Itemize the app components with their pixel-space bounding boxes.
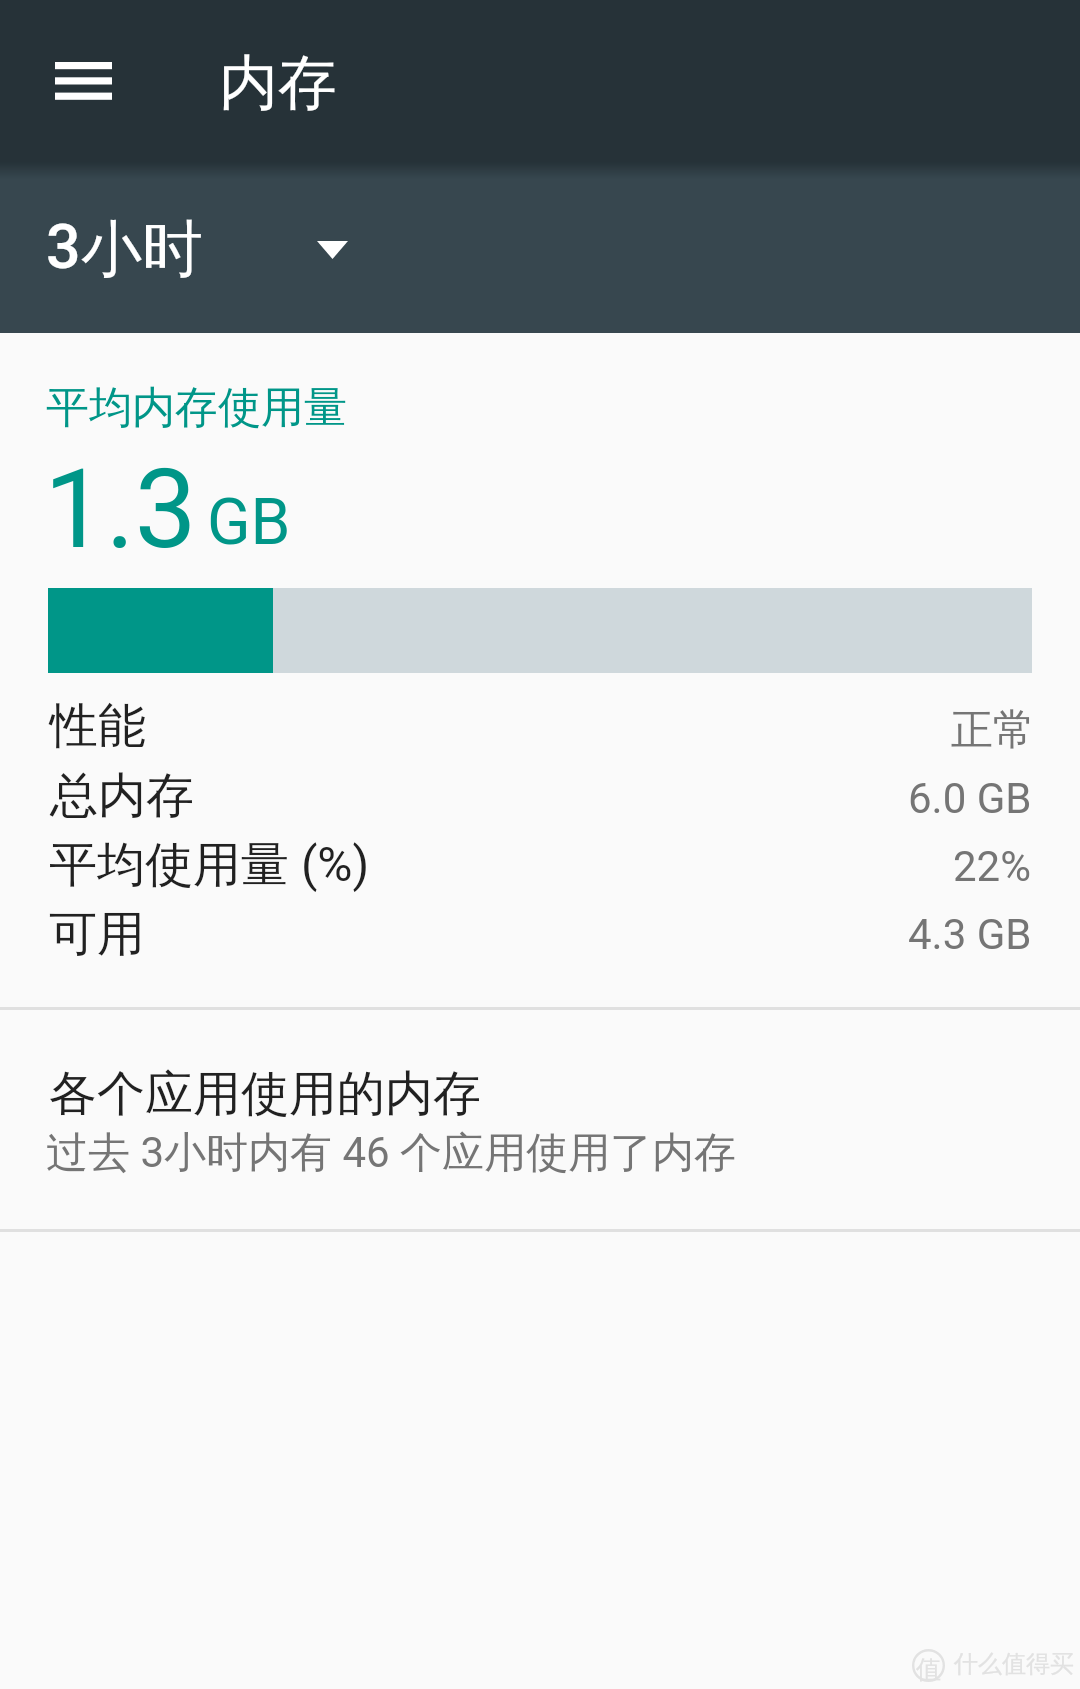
staticText: 3 — [46, 211, 81, 282]
staticText: 可用 — [49, 904, 145, 964]
staticText: 平均内存使用量 — [46, 381, 347, 435]
staticText: 正常 — [951, 704, 1035, 757]
staticText: 什么值得买 — [954, 1649, 1074, 1679]
button[interactable]: Open navigation menu — [31, 29, 135, 133]
button[interactable]: 各个应用使用的内存 — [0, 1010, 1080, 1229]
staticText: 1.3 — [44, 445, 197, 574]
staticText: 22% — [953, 842, 1031, 891]
staticText: 总内存 — [50, 766, 194, 826]
staticText: 内存 — [219, 46, 337, 120]
staticText: 4.3 GB — [908, 910, 1032, 959]
staticText: 过去 3小时内有 46 个应用使用了内存 — [46, 1127, 737, 1180]
staticText: 各个应用使用的内存 — [49, 1064, 481, 1124]
staticText: 值 — [916, 1654, 941, 1685]
staticText: 性能 — [50, 696, 146, 756]
staticText: 平均使用量 (%) — [49, 835, 370, 895]
button[interactable]: 3 — [24, 186, 371, 308]
staticText: GB — [207, 485, 291, 560]
staticText: 小时 — [81, 211, 203, 288]
staticText: 6.0 GB — [908, 774, 1032, 823]
